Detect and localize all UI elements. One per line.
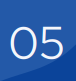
staticText: 05	[8, 12, 65, 72]
